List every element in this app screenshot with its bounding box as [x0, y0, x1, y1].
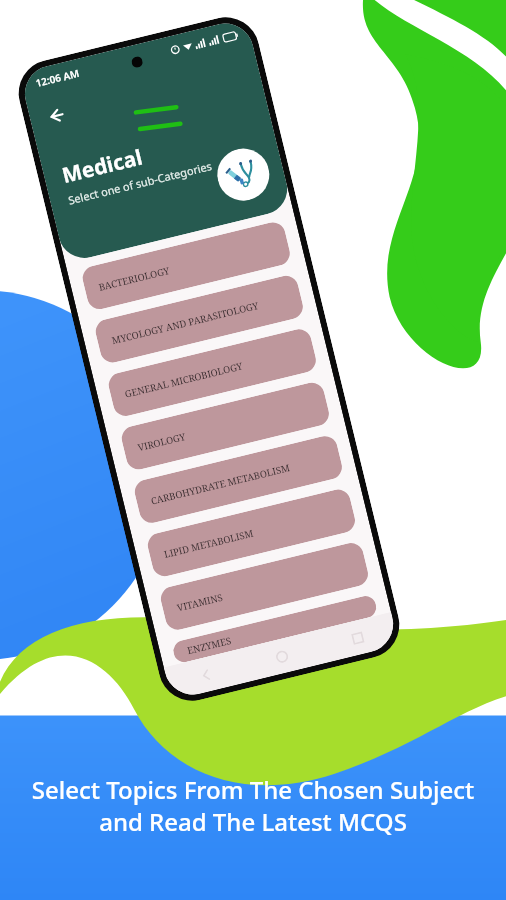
staticText: BACTERIOLOGY — [97, 264, 171, 294]
button[interactable]: ENZYMES — [171, 594, 378, 664]
staticText: 12:06 AM — [34, 66, 81, 90]
button[interactable]: Back — [34, 94, 78, 137]
button[interactable]: LIPID METABOLISM — [145, 487, 358, 579]
staticText: VITAMINS — [176, 591, 224, 614]
staticText: Medical — [59, 142, 146, 190]
button[interactable]: GENERAL MICROBIOLOGY — [106, 327, 319, 419]
staticText: MYCOLOGY AND PARASITOLOGY — [110, 299, 260, 347]
button[interactable]: Medical category — [212, 143, 275, 206]
staticText: CARBOHYDRATE METABOLISM — [149, 461, 291, 508]
button[interactable]: BACTERIOLOGY — [80, 220, 292, 312]
button[interactable]: CARBOHYDRATE METABOLISM — [132, 433, 345, 525]
staticText: Select one of sub-Categories — [67, 158, 214, 207]
staticText: Select Topics From The Chosen Subject an… — [18, 773, 488, 838]
staticText: LIPID METABOLISM — [162, 527, 255, 561]
staticText: GENERAL MICROBIOLOGY — [123, 359, 244, 401]
button[interactable]: Back — [164, 649, 248, 700]
button[interactable]: Recents — [315, 612, 399, 664]
button[interactable]: VITAMINS — [158, 540, 371, 632]
staticText: VIROLOGY — [136, 430, 187, 454]
button[interactable]: MYCOLOGY AND PARASITOLOGY — [93, 273, 305, 365]
button[interactable]: VIROLOGY — [119, 380, 332, 472]
button[interactable]: Home — [240, 630, 323, 682]
staticText: ENZYMES — [186, 634, 233, 657]
